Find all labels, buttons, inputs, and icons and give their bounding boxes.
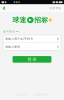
button[interactable]: 登 录: [13, 56, 51, 63]
button[interactable]: 使用帮助: [47, 4, 64, 12]
staticText: 使用帮助: [50, 7, 62, 10]
staticText: 账号登录: [3, 30, 15, 33]
staticText: 登 录: [27, 57, 36, 62]
button[interactable]: 请输入用户名/手机号: [3, 35, 61, 43]
staticText: 招标: [34, 16, 48, 24]
staticText: 球速: [12, 16, 26, 24]
button[interactable]: 请输入密码: [3, 43, 61, 51]
button[interactable]: Back: [0, 4, 8, 12]
staticText: 请输入用户名/手机号: [5, 37, 33, 40]
staticText: 请输入密码: [5, 45, 20, 48]
